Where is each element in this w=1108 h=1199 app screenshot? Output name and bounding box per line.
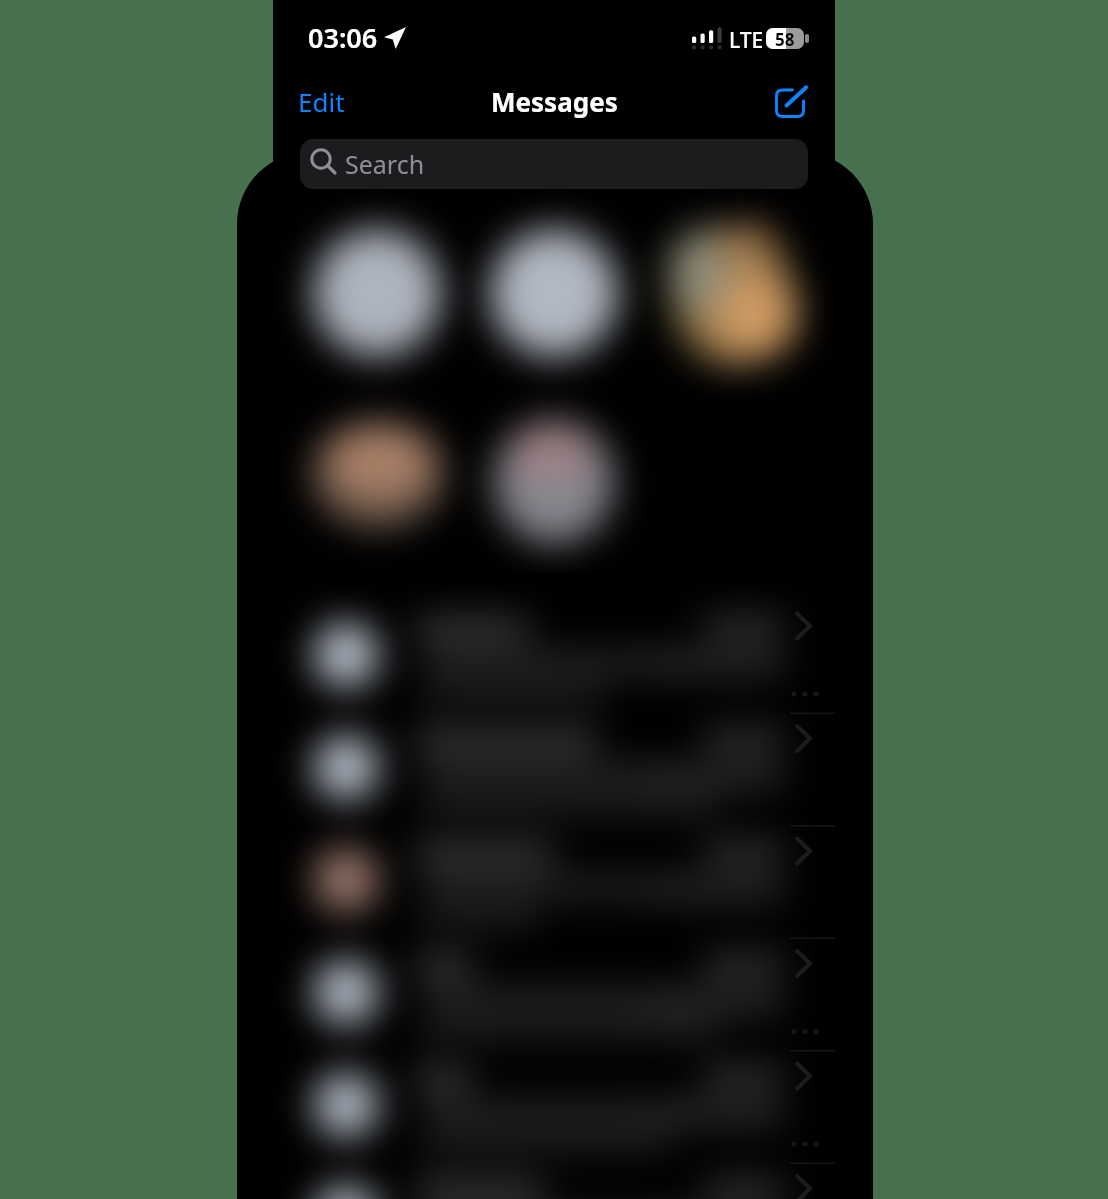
button[interactable]: Conversation 5 [273, 1052, 835, 1165]
button[interactable]: Conversation 1 [273, 602, 835, 715]
button[interactable]: Pinned conversation 2 [488, 227, 620, 359]
button[interactable]: New message [770, 82, 812, 124]
button[interactable]: Pinned conversation 5 [488, 416, 620, 548]
staticText: LTE [729, 26, 764, 55]
button[interactable]: Conversation 2 [273, 715, 835, 828]
staticText: Search [345, 147, 425, 181]
button[interactable]: Search [300, 139, 808, 189]
button[interactable]: Conversation 4 [273, 940, 835, 1053]
button[interactable]: Conversation 3 [273, 827, 835, 940]
staticText: 58 [775, 28, 795, 49]
button[interactable]: Pinned conversation 3 [668, 234, 800, 366]
button[interactable]: Conversation 6 [273, 1165, 835, 1199]
button[interactable]: Pinned conversation 4 [312, 408, 444, 540]
button[interactable]: Pinned conversation 1 [311, 227, 443, 359]
staticText: Edit [298, 84, 345, 119]
staticText: 03:06 [308, 19, 378, 56]
button[interactable]: Edit [287, 79, 357, 123]
staticText: Messages [491, 84, 618, 119]
